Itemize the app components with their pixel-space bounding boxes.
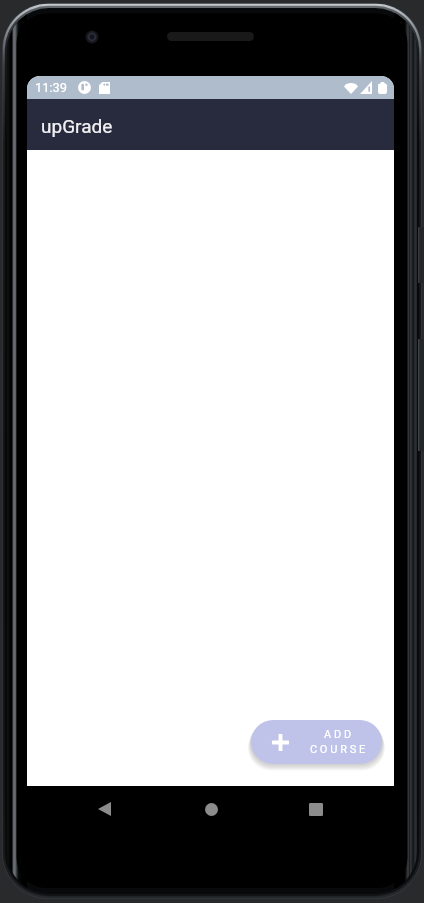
staticText: ADD COURSE	[307, 728, 371, 756]
staticText: 11:39	[35, 80, 68, 95]
button[interactable]: Recents	[296, 786, 336, 832]
button[interactable]: Back	[84, 786, 124, 832]
button[interactable]: Home	[191, 786, 231, 832]
staticText: upGrade	[41, 115, 113, 137]
button[interactable]: ADD COURSE	[251, 720, 382, 764]
